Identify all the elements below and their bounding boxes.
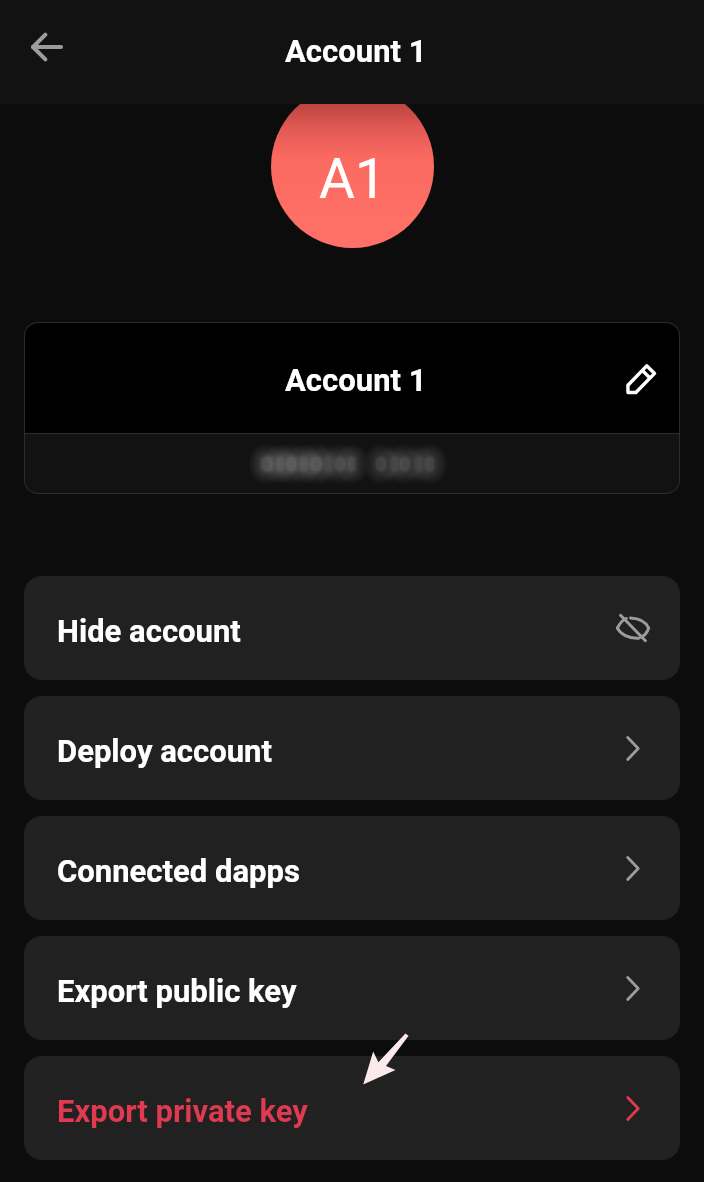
staticText: Hide account xyxy=(57,613,241,649)
button[interactable]: Connected dapps xyxy=(24,816,680,920)
staticText: A1 xyxy=(319,147,386,211)
button[interactable]: Hide account xyxy=(24,576,680,680)
button[interactable]: Back xyxy=(16,16,78,78)
staticText: Export private key xyxy=(57,1093,308,1129)
staticText: Export public key xyxy=(57,973,297,1009)
button[interactable]: Copy address xyxy=(25,434,679,493)
button[interactable]: Deploy account xyxy=(24,696,680,800)
button[interactable]: Export private key xyxy=(24,1056,680,1160)
staticText: Account 1 xyxy=(285,33,427,69)
button[interactable]: Export public key xyxy=(24,936,680,1040)
button[interactable]: Rename account xyxy=(614,350,670,406)
staticText: Deploy account xyxy=(57,733,272,769)
staticText: Connected dapps xyxy=(57,853,300,889)
staticText: Account 1 xyxy=(285,362,427,398)
